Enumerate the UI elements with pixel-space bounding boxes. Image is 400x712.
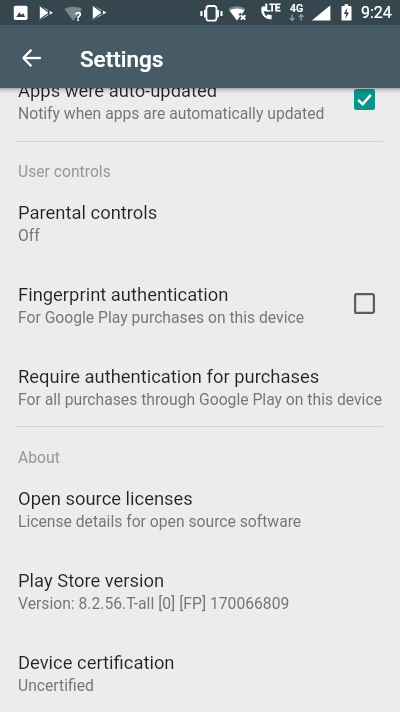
staticText: Fingerprint authentication (18, 284, 229, 306)
staticText: Play Store version (18, 570, 165, 592)
staticText: 4G (290, 2, 304, 14)
staticText: Version: 8.2.56.T-all [0] [FP] 170066809 (18, 594, 290, 612)
staticText: Require authentication for purchases (18, 366, 320, 388)
staticText: Open source licenses (18, 488, 193, 510)
button[interactable] (0, 636, 400, 712)
button[interactable] (0, 350, 400, 420)
staticText: LTE (265, 2, 281, 13)
staticText: User controls (18, 162, 111, 180)
button[interactable]: Apps were auto-updated, checked (354, 89, 375, 110)
staticText: Settings (80, 46, 164, 72)
staticText: For all purchases through Google Play on… (18, 390, 382, 408)
staticText: Device certification (18, 652, 175, 674)
button[interactable] (0, 554, 400, 633)
staticText: 9:24 (361, 3, 392, 22)
button[interactable] (0, 88, 400, 130)
button[interactable] (0, 186, 400, 265)
button[interactable] (0, 268, 400, 347)
staticText: Notify when apps are automatically updat… (18, 104, 325, 122)
button[interactable]: Fingerprint authentication, unchecked (354, 293, 375, 314)
staticText: Uncertified (18, 676, 94, 694)
staticText: Apps were auto-updated (18, 80, 218, 102)
staticText: For Google Play purchases on this device (18, 308, 305, 326)
staticText: Parental controls (18, 202, 158, 224)
staticText: License details for open source software (18, 512, 302, 530)
button[interactable] (0, 472, 400, 551)
staticText: ? (75, 8, 82, 24)
staticText: Off (18, 226, 40, 244)
button[interactable]: Navigate up (8, 34, 56, 82)
staticText: About (18, 448, 60, 466)
